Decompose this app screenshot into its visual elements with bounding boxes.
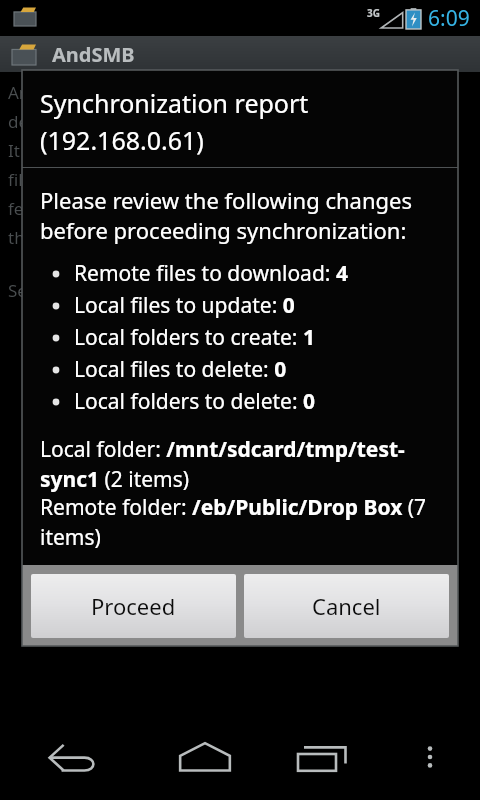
staticText: Cancel xyxy=(312,591,381,621)
button[interactable]: Back xyxy=(0,714,146,800)
staticText: Proceed xyxy=(91,591,176,621)
staticText: Local folder: /mnt/sdcard/tmp/test-sync1… xyxy=(40,435,444,493)
staticText: It can browse folders and files, and to … xyxy=(8,139,368,162)
staticText: Please review the following changes befo… xyxy=(40,185,444,245)
staticText: files and folders to download or upload … xyxy=(8,168,357,191)
button[interactable]: Home xyxy=(146,714,263,800)
staticText: AndSMB is a SMB (Samba/CIFS) client for … xyxy=(8,81,401,104)
staticText: 6:09 xyxy=(428,4,470,33)
button[interactable]: Proceed xyxy=(31,574,236,638)
staticText: AndSMB xyxy=(52,41,135,68)
staticText: Local files to update: 0 xyxy=(74,291,295,320)
staticText: Select a server : xyxy=(8,279,133,302)
button[interactable]: Cancel xyxy=(244,574,449,638)
button[interactable]: More options xyxy=(380,714,480,800)
staticText: Local folders to create: 1 xyxy=(74,323,315,352)
staticText: Remote folder: /eb/Public/Drop Box (7 it… xyxy=(40,493,444,551)
staticText: Local files to delete: 0 xyxy=(74,355,287,384)
staticText: Synchronization report xyxy=(40,86,309,120)
staticText: Remote files to download: 4 xyxy=(74,259,348,288)
staticText: (192.168.0.61) xyxy=(40,123,204,157)
staticText: features. Files can be downloaded or upl… xyxy=(8,197,381,220)
staticText: devices. It allows you to connect to SMB… xyxy=(8,110,388,133)
staticText: the server. xyxy=(8,226,91,249)
button[interactable]: Recent apps xyxy=(263,714,380,800)
staticText: 3G xyxy=(367,6,380,20)
staticText: Local folders to delete: 0 xyxy=(74,387,316,416)
